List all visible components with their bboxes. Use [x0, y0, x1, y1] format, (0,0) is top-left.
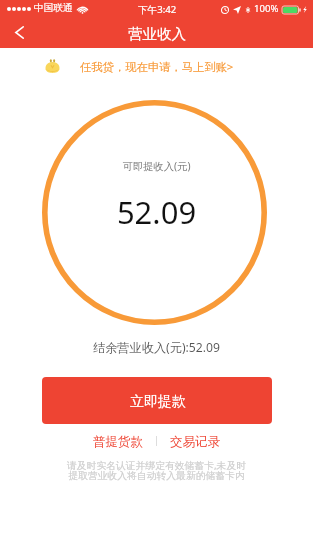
button[interactable]: 立即提款: [42, 377, 272, 424]
staticText: 中国联通: [34, 2, 73, 14]
staticText: 普提货款: [93, 434, 143, 448]
button[interactable]: 任我贷，现在申请，马上到账>: [0, 56, 313, 76]
staticText: 可即提收入(元): [0, 159, 313, 173]
button[interactable]: 普提货款: [87, 431, 149, 451]
button[interactable]: 交易记录: [164, 431, 226, 451]
staticText: 52.09: [0, 191, 313, 233]
staticText: 交易记录: [170, 434, 220, 448]
staticText: 结余营业收入(元):52.09: [0, 339, 313, 356]
staticText: 任我贷，现在申请，马上到账>: [80, 59, 234, 74]
staticText: 立即提款: [130, 393, 186, 411]
staticText: 100%: [254, 2, 279, 15]
staticText: 请及时实名认证并绑定有效储蓄卡,未及时 提取营业收入将自动转入最新的储蓄卡内: [30, 459, 283, 482]
staticText: 营业收入: [128, 25, 186, 43]
button[interactable]: Back: [2, 18, 36, 46]
staticText: 下午3:42: [138, 3, 177, 16]
